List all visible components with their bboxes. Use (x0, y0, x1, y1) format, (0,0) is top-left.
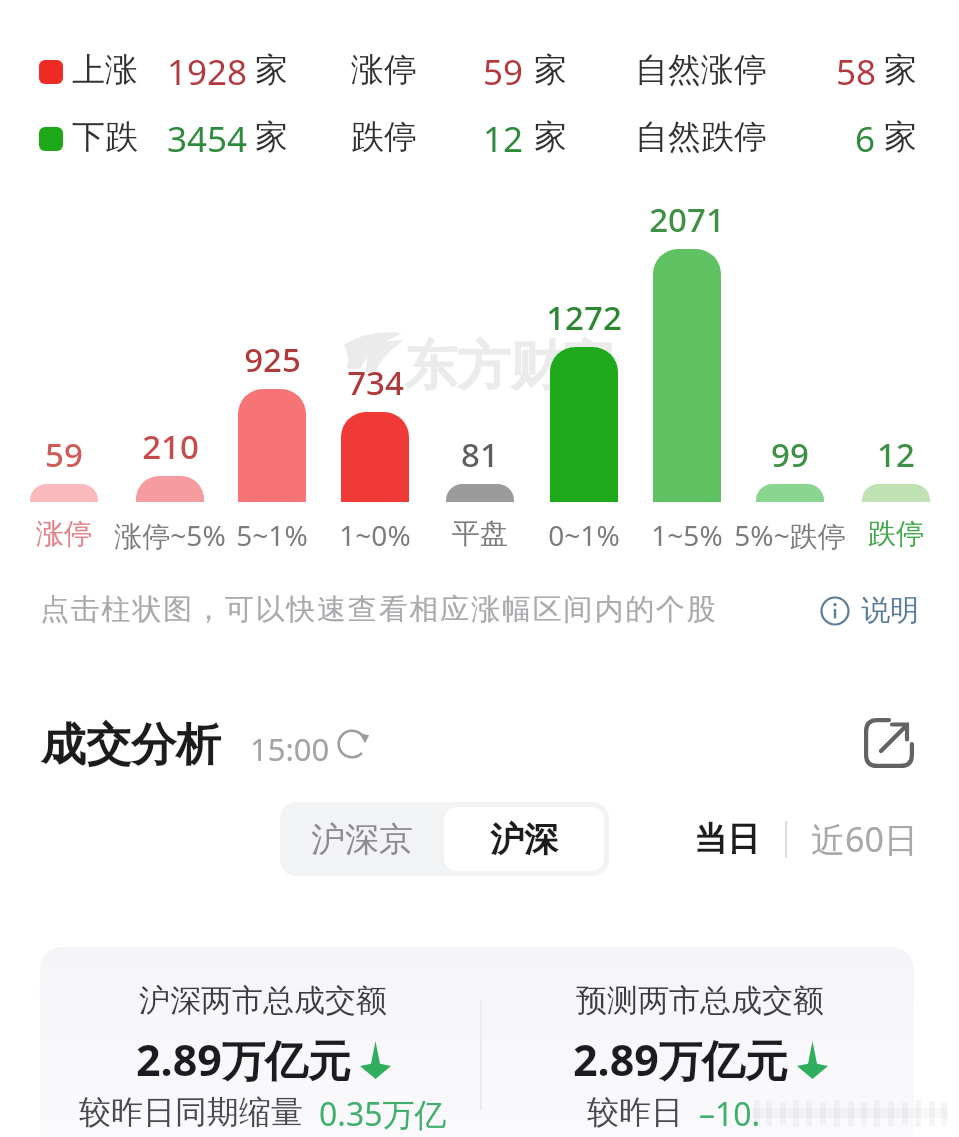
staticText: 近60日 (811, 816, 918, 862)
staticText: 预测两市总成交额 (576, 981, 824, 1020)
staticText: 210 (142, 424, 199, 469)
staticText: 当日 (694, 818, 760, 860)
staticText: 平盘 (452, 516, 508, 551)
staticText: 5~1% (236, 516, 308, 554)
staticText: 家 (534, 116, 567, 158)
button[interactable] (136, 476, 204, 502)
button[interactable] (756, 484, 824, 502)
staticText: 沪深 (490, 818, 558, 861)
button[interactable] (481, 947, 917, 1137)
staticText: 说明 (861, 592, 919, 629)
staticText: 家 (884, 49, 917, 91)
staticText: 5%~跌停 (734, 516, 846, 554)
staticText: 1~0% (339, 516, 411, 554)
staticText: 成交分析 (41, 717, 221, 774)
staticText: 58 (836, 48, 877, 96)
staticText: 3454 (167, 115, 248, 163)
button[interactable] (862, 484, 930, 502)
staticText: 涨停 (36, 516, 92, 551)
staticText: 跌停 (351, 116, 417, 158)
button[interactable]: 近60日 (799, 806, 930, 872)
staticText: 自然跌停 (635, 116, 767, 158)
staticText: 59 (483, 48, 524, 96)
staticText: 跌停 (868, 516, 924, 551)
staticText: 1272 (546, 295, 622, 340)
staticText: 涨停~5% (114, 516, 226, 554)
staticText: 沪深两市总成交额 (139, 981, 387, 1020)
staticText: –10. (699, 1092, 761, 1136)
button[interactable] (238, 389, 306, 502)
button[interactable]: Open in new window (864, 718, 914, 768)
button[interactable]: 说明 (819, 592, 919, 629)
staticText: 1928 (167, 48, 248, 96)
button[interactable]: Refresh (334, 726, 370, 762)
staticText: 点击柱状图，可以快速查看相应涨幅区间内的个股 (40, 591, 718, 628)
button[interactable]: 当日 (679, 806, 775, 872)
button[interactable] (341, 412, 409, 502)
staticText: 12 (483, 115, 524, 163)
staticText: 99 (771, 432, 809, 477)
staticText: 自然涨停 (635, 49, 767, 91)
button[interactable]: 沪深 (444, 807, 604, 871)
button[interactable] (40, 947, 480, 1137)
staticText: 925 (244, 337, 301, 382)
staticText: 家 (255, 116, 288, 158)
staticText: 上涨 (72, 49, 138, 91)
staticText: 15:00 (250, 728, 330, 770)
staticText: 81 (461, 432, 499, 477)
staticText: 涨停 (351, 49, 417, 91)
staticText: 2071 (649, 197, 725, 242)
staticText: 下跌 (72, 116, 138, 158)
staticText: 2.89万亿元 (573, 1030, 788, 1089)
staticText: 0~1% (548, 516, 620, 554)
staticText: 0.35万亿 (319, 1092, 447, 1136)
staticText: 12 (877, 432, 915, 477)
staticText: 2.89万亿元 (136, 1030, 351, 1089)
staticText: 较昨日同期缩量 (79, 1092, 303, 1132)
staticText: 家 (534, 49, 567, 91)
button[interactable]: 沪深京 (280, 802, 444, 876)
staticText: 59 (45, 432, 83, 477)
staticText: 东方财富 (404, 333, 616, 400)
staticText: 家 (255, 49, 288, 91)
button[interactable] (550, 347, 618, 502)
staticText: 家 (884, 116, 917, 158)
button[interactable] (446, 484, 514, 502)
staticText: 较昨日 (587, 1092, 683, 1132)
staticText: 沪深京 (311, 818, 413, 861)
button[interactable] (653, 249, 721, 502)
staticText: 734 (347, 360, 404, 405)
staticText: 6 (855, 115, 876, 163)
staticText: 1~5% (651, 516, 723, 554)
button[interactable] (30, 484, 98, 502)
